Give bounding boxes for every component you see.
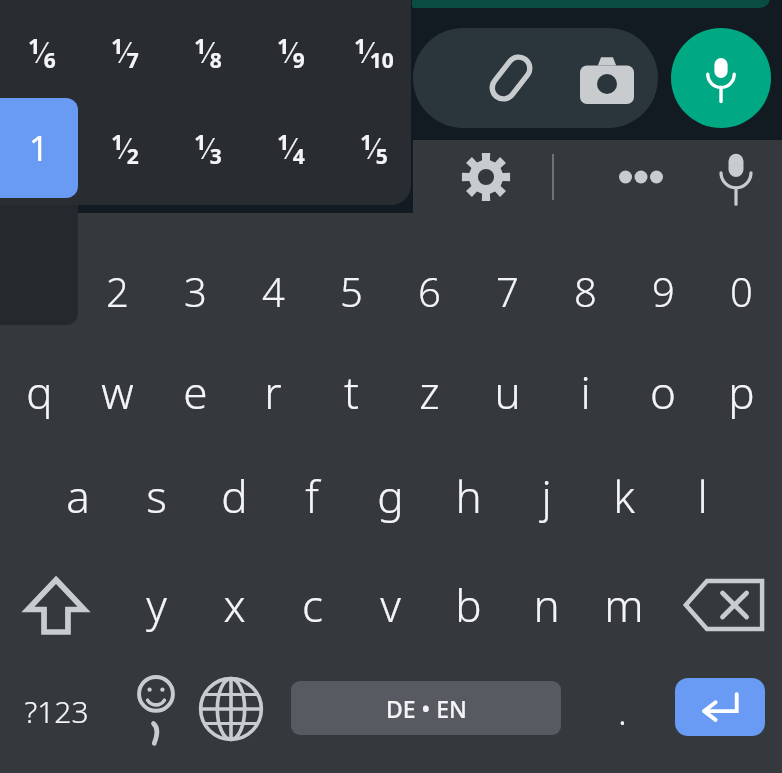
button[interactable]: b bbox=[429, 560, 507, 650]
staticText: 8 bbox=[574, 264, 597, 318]
staticText: k bbox=[613, 466, 635, 526]
staticText: r bbox=[264, 362, 282, 422]
button[interactable]: m bbox=[585, 560, 663, 650]
staticText: 1⁄9 bbox=[277, 31, 305, 74]
staticText: . bbox=[618, 687, 627, 736]
button[interactable]: f bbox=[273, 456, 351, 536]
button[interactable]: 1⁄4 bbox=[249, 110, 332, 186]
staticText: x bbox=[223, 575, 246, 635]
staticText: g bbox=[377, 466, 404, 526]
button[interactable]: Camera bbox=[580, 52, 634, 104]
button[interactable]: h bbox=[429, 456, 507, 536]
staticText: e bbox=[183, 362, 208, 422]
button[interactable]: Emoji and comma bbox=[120, 666, 192, 756]
button[interactable]: r bbox=[234, 352, 312, 432]
button[interactable]: z bbox=[390, 352, 468, 432]
staticText: 1⁄5 bbox=[360, 127, 388, 170]
button[interactable]: 5 bbox=[312, 252, 390, 330]
button[interactable]: 1⁄7 bbox=[83, 14, 166, 90]
button[interactable]: y bbox=[117, 560, 195, 650]
staticText: u bbox=[494, 362, 521, 422]
staticText: w bbox=[101, 362, 134, 422]
button[interactable]: g bbox=[351, 456, 429, 536]
button[interactable]: a bbox=[39, 456, 117, 536]
staticText: 6 bbox=[418, 264, 441, 318]
staticText: 9 bbox=[652, 264, 675, 318]
staticText: c bbox=[302, 575, 323, 635]
button[interactable]: 7 bbox=[468, 252, 546, 330]
staticText: ?123 bbox=[24, 691, 89, 732]
staticText: 3 bbox=[184, 264, 207, 318]
button[interactable]: ?123 bbox=[2, 668, 110, 754]
button[interactable]: s bbox=[117, 456, 195, 536]
button[interactable]: k bbox=[585, 456, 663, 536]
button[interactable]: Backspace bbox=[672, 562, 778, 648]
button[interactable]: j bbox=[507, 456, 585, 536]
staticText: p bbox=[728, 362, 755, 422]
staticText: q bbox=[26, 362, 53, 422]
button[interactable]: Change language bbox=[198, 676, 264, 742]
button[interactable]: 0 bbox=[702, 252, 780, 330]
button[interactable]: u bbox=[468, 352, 546, 432]
button[interactable]: Shift bbox=[4, 560, 108, 650]
button[interactable]: 3 bbox=[156, 252, 234, 330]
staticText: 1 bbox=[29, 125, 49, 171]
staticText: h bbox=[455, 466, 482, 526]
button[interactable]: Voice input bbox=[711, 148, 761, 206]
button[interactable]: o bbox=[624, 352, 702, 432]
button[interactable]: i bbox=[546, 352, 624, 432]
button[interactable] bbox=[413, 28, 658, 128]
button[interactable]: p bbox=[702, 352, 780, 432]
staticText: 1⁄8 bbox=[194, 31, 222, 74]
button[interactable]: 1⁄9 bbox=[249, 14, 332, 90]
button[interactable]: 1⁄6 bbox=[0, 14, 83, 90]
staticText: 1⁄6 bbox=[28, 31, 56, 74]
button[interactable]: d bbox=[195, 456, 273, 536]
button[interactable]: 8 bbox=[546, 252, 624, 330]
button[interactable]: DE • EN bbox=[291, 681, 561, 735]
staticText: b bbox=[455, 575, 482, 635]
button[interactable]: 9 bbox=[624, 252, 702, 330]
staticText: o bbox=[650, 362, 676, 422]
staticText: z bbox=[419, 362, 440, 422]
button[interactable]: . bbox=[586, 668, 658, 754]
button[interactable]: Settings bbox=[460, 151, 512, 203]
button[interactable]: c bbox=[273, 560, 351, 650]
button[interactable]: t bbox=[312, 352, 390, 432]
button[interactable]: Enter bbox=[675, 678, 765, 736]
button[interactable]: 1⁄2 bbox=[83, 110, 166, 186]
staticText: 1⁄4 bbox=[277, 127, 305, 170]
staticText: 1⁄10 bbox=[354, 31, 394, 74]
button[interactable]: 6 bbox=[390, 252, 468, 330]
staticText: 2 bbox=[106, 264, 129, 318]
button[interactable]: 1⁄10 bbox=[332, 14, 415, 90]
button[interactable]: More options bbox=[598, 154, 684, 200]
button[interactable]: w bbox=[78, 352, 156, 432]
button[interactable]: e bbox=[156, 352, 234, 432]
button[interactable]: 1⁄5 bbox=[332, 110, 415, 186]
staticText: t bbox=[344, 362, 359, 422]
staticText: 0 bbox=[730, 264, 753, 318]
staticText: DE • EN bbox=[386, 693, 467, 724]
button[interactable]: n bbox=[507, 560, 585, 650]
button[interactable]: 1 bbox=[0, 98, 78, 198]
button[interactable]: q bbox=[0, 352, 78, 432]
staticText: f bbox=[305, 466, 319, 526]
button[interactable]: Record voice message bbox=[671, 28, 771, 128]
button[interactable]: 4 bbox=[234, 252, 312, 330]
button[interactable]: 1⁄3 bbox=[166, 110, 249, 186]
staticText: 5 bbox=[340, 264, 363, 318]
staticText: d bbox=[221, 466, 248, 526]
staticText: 7 bbox=[496, 264, 519, 318]
button[interactable]: l bbox=[663, 456, 741, 536]
button[interactable]: Attach bbox=[483, 50, 539, 106]
button[interactable]: 2 bbox=[78, 252, 156, 330]
staticText: i bbox=[580, 362, 591, 422]
button[interactable]: v bbox=[351, 560, 429, 650]
staticText: m bbox=[604, 575, 644, 635]
button[interactable]: x bbox=[195, 560, 273, 650]
staticText: 1⁄3 bbox=[194, 127, 222, 170]
staticText: 1⁄2 bbox=[111, 127, 139, 170]
button[interactable]: 1⁄8 bbox=[166, 14, 249, 90]
staticText: n bbox=[533, 575, 560, 635]
